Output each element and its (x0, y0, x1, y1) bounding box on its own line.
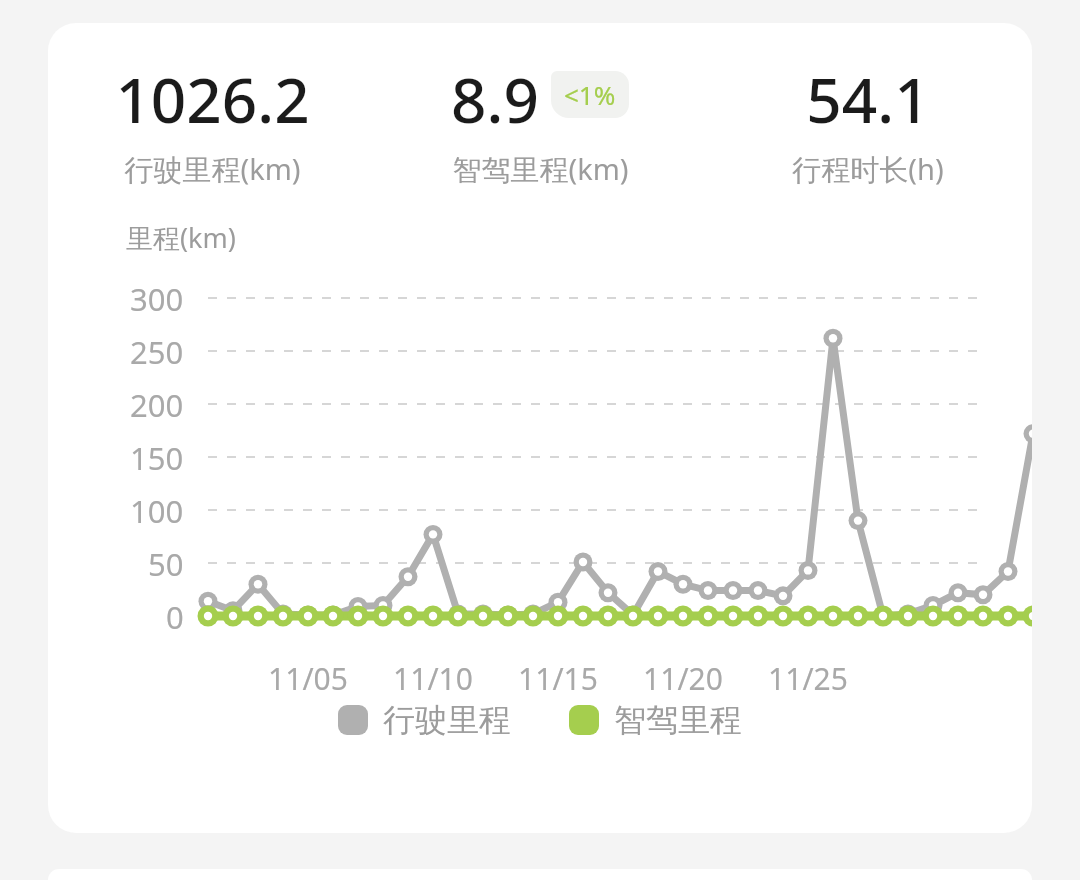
staticText: 50 (148, 543, 184, 585)
button[interactable]: 1026.2 (48, 57, 376, 189)
staticText: 行程时长(h) (792, 149, 944, 189)
button[interactable]: 54.1 (704, 57, 1032, 189)
staticText: 1026.2 (115, 57, 310, 141)
staticText: 200 (130, 384, 184, 426)
button[interactable]: 8.9 (376, 57, 704, 189)
staticText: 11/10 (393, 658, 473, 692)
staticText: 8.9 (451, 57, 539, 141)
staticText: 11/20 (643, 658, 723, 692)
button[interactable]: 智驾里程 (569, 700, 742, 740)
staticText: <1% (564, 77, 616, 112)
staticText: 0 (166, 596, 184, 638)
staticText: 54.1 (806, 57, 930, 141)
staticText: 11/25 (768, 658, 848, 692)
staticText: 智驾里程(km) (452, 149, 629, 189)
button[interactable]: 1026.2 (48, 23, 1032, 833)
staticText: 300 (130, 278, 184, 320)
button[interactable]: 行驶里程 (338, 700, 511, 740)
staticText: 里程(km) (126, 219, 236, 256)
staticText: 智驾里程 (614, 700, 742, 740)
staticText: 行驶里程 (383, 700, 511, 740)
staticText: 250 (130, 331, 184, 373)
staticText: 11/15 (518, 658, 598, 692)
staticText: 150 (130, 437, 184, 479)
staticText: 11/05 (268, 658, 348, 692)
staticText: 100 (130, 490, 184, 532)
staticText: 行驶里程(km) (124, 149, 301, 189)
